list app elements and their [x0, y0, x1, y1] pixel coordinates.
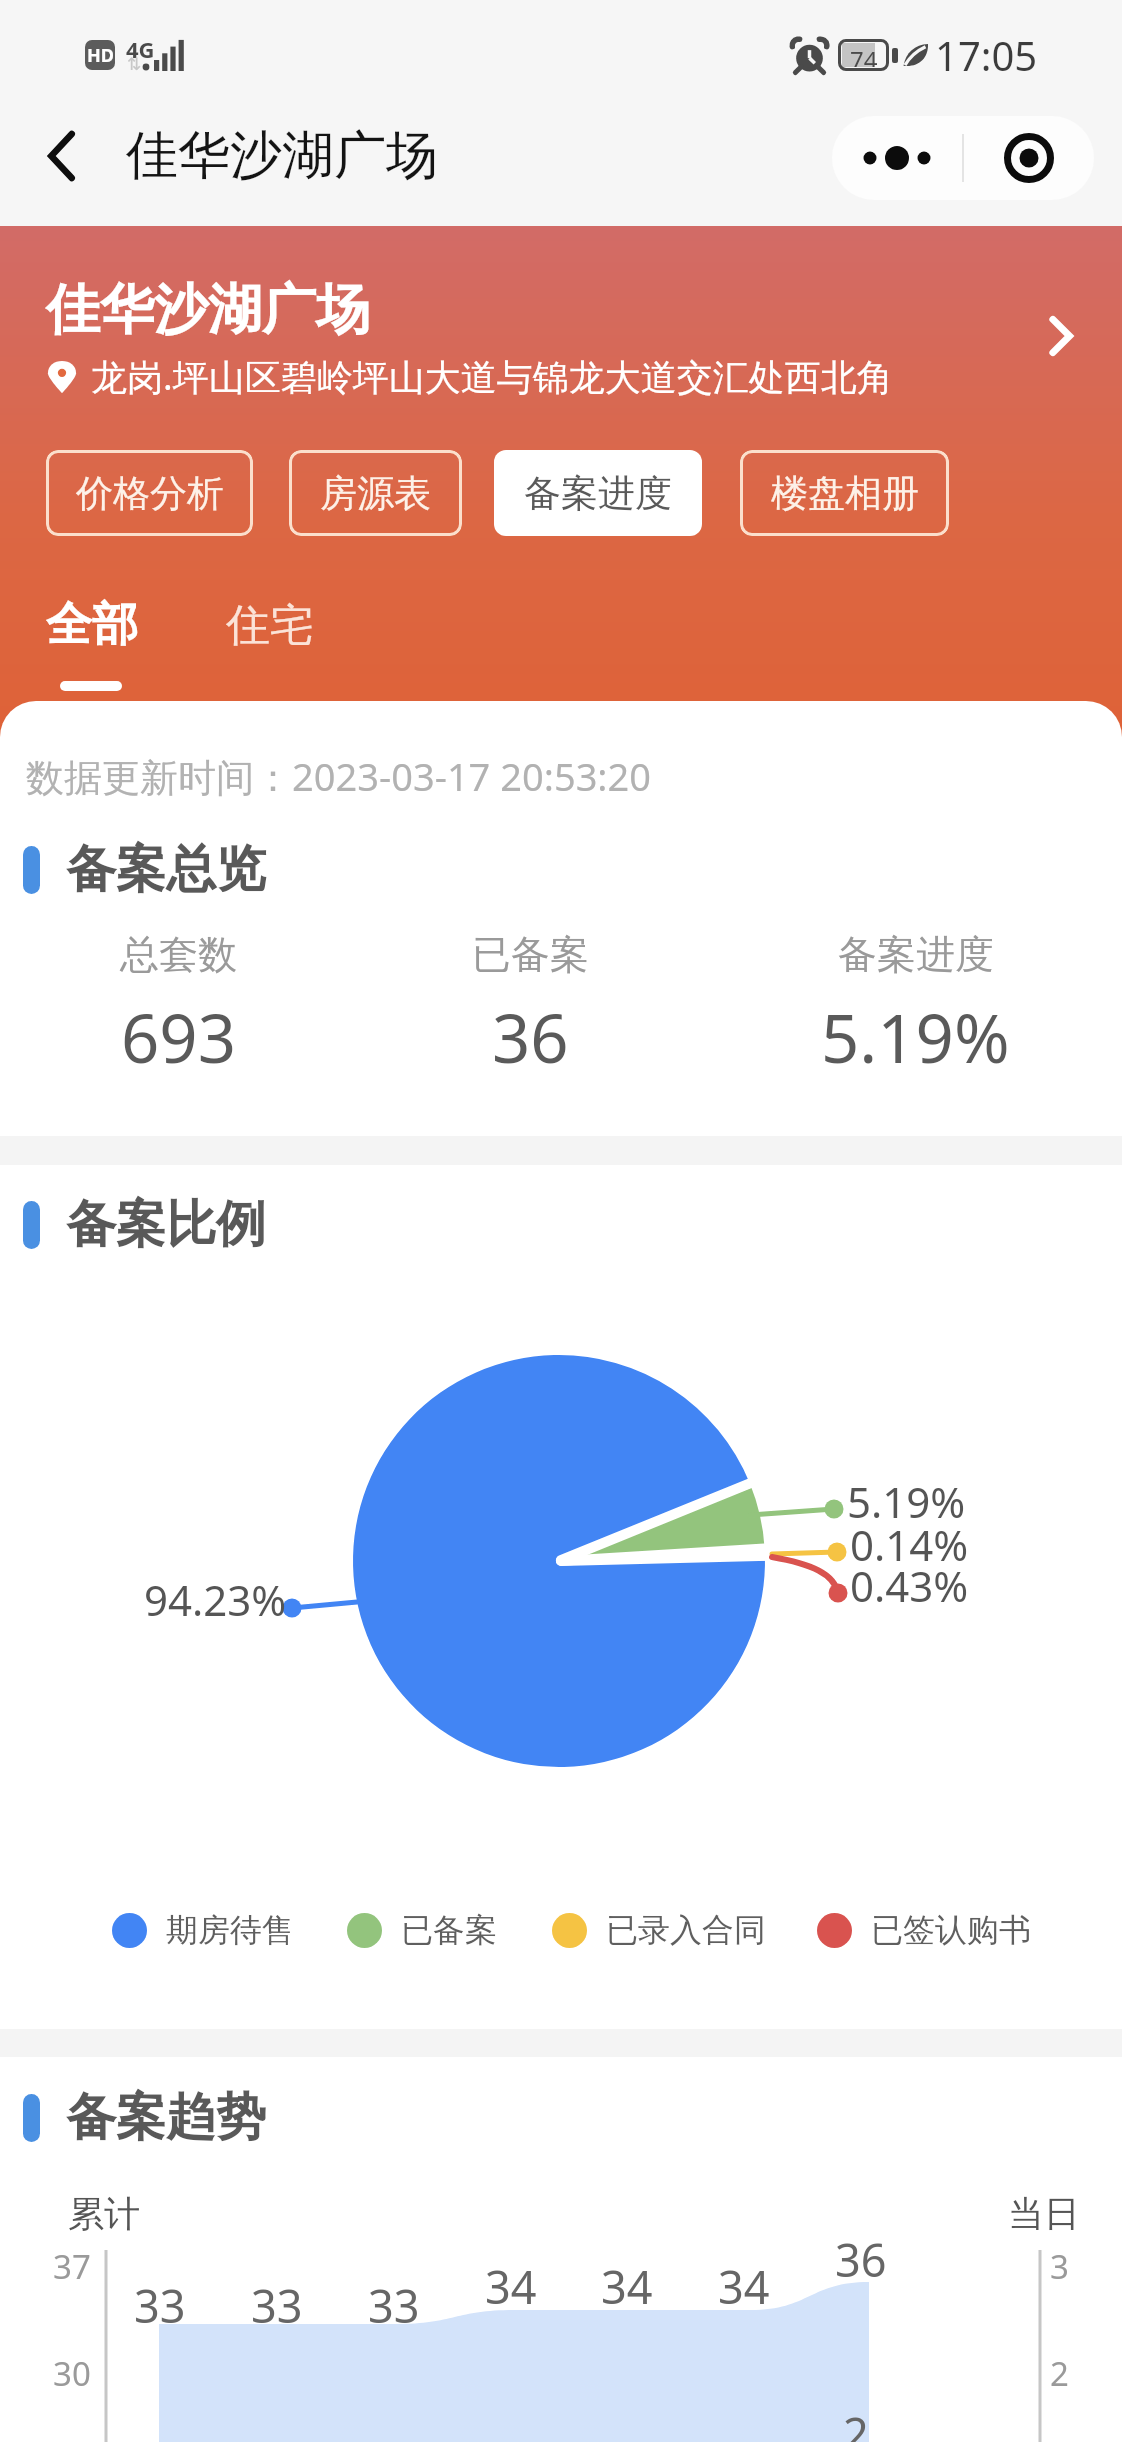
button[interactable]: 全部	[30, 584, 150, 702]
button[interactable]: 已录入合同	[552, 1910, 766, 1950]
staticText: 佳华沙湖广场	[126, 123, 438, 189]
staticText: 94.23%	[144, 1571, 287, 1628]
button[interactable]: 住宅	[210, 584, 330, 702]
button[interactable]: 已签认购书	[817, 1910, 1031, 1950]
staticText: 37	[53, 2244, 91, 2289]
staticText: 34	[718, 2256, 770, 2317]
staticText: 74	[850, 43, 878, 67]
staticText: 期房待售	[166, 1910, 294, 1950]
staticText: 当日	[1008, 2191, 1080, 2236]
staticText: 已备案	[472, 930, 589, 979]
staticText: ⇅	[127, 54, 142, 74]
staticText: 5.19%	[847, 1473, 966, 1530]
staticText: 2	[1050, 2351, 1069, 2396]
staticText: 17:05	[935, 28, 1038, 82]
staticText: 已签认购书	[871, 1910, 1031, 1950]
button[interactable]: 价格分析	[46, 450, 253, 536]
button[interactable]: 已备案	[347, 1910, 497, 1950]
staticText: 0.14%	[850, 1516, 969, 1573]
staticText: 5.19%	[821, 991, 1010, 1082]
button[interactable]: 楼盘相册	[740, 450, 949, 536]
staticText: 房源表	[320, 470, 431, 517]
staticText: 佳华沙湖广场	[46, 276, 370, 344]
staticText: HD	[87, 43, 114, 68]
button[interactable]: 备案进度	[494, 450, 702, 536]
staticText: 全部	[46, 596, 138, 654]
staticText: 备案比例	[66, 1193, 266, 1256]
staticText: 数据更新时间：2023-03-17 20:53:20	[26, 750, 652, 802]
staticText: 备案趋势	[66, 2086, 266, 2149]
button[interactable]: 总套数	[0, 930, 358, 1082]
staticText: 33	[251, 2275, 303, 2336]
staticText: 33	[134, 2275, 186, 2336]
staticText: 34	[485, 2256, 537, 2317]
staticText: 住宅	[226, 598, 314, 653]
staticText: 36	[492, 991, 569, 1082]
button[interactable]: More options	[832, 116, 962, 200]
staticText: 3	[1050, 2244, 1069, 2289]
staticText: 总套数	[120, 930, 237, 979]
button[interactable]: 已备案	[350, 930, 710, 1082]
staticText: 0.43%	[850, 1557, 969, 1614]
staticText: 楼盘相册	[771, 470, 919, 517]
staticText: 34	[601, 2256, 653, 2317]
staticText: 价格分析	[76, 470, 224, 517]
button[interactable]: 备案进度	[735, 930, 1095, 1082]
button[interactable]: Back	[0, 104, 104, 208]
button[interactable]: 房源表	[289, 450, 462, 536]
staticText: 693	[121, 991, 236, 1082]
staticText: 备案总览	[66, 838, 266, 901]
button[interactable]: Project detail	[1026, 304, 1090, 368]
staticText: 已录入合同	[606, 1910, 766, 1950]
staticText: 已备案	[401, 1910, 497, 1950]
staticText: 累计	[68, 2191, 140, 2236]
staticText: 33	[368, 2275, 420, 2336]
staticText: 4G	[126, 34, 155, 64]
staticText: 备案进度	[838, 930, 994, 979]
staticText: 龙岗.坪山区碧岭坪山大道与锦龙大道交汇处西北角	[91, 352, 893, 401]
staticText: 30	[53, 2351, 91, 2396]
button[interactable]: 期房待售	[112, 1910, 294, 1950]
button[interactable]: Close mini program	[964, 116, 1094, 200]
staticText: 2	[843, 2403, 869, 2442]
staticText: 36	[835, 2229, 887, 2290]
staticText: 备案进度	[524, 470, 672, 517]
